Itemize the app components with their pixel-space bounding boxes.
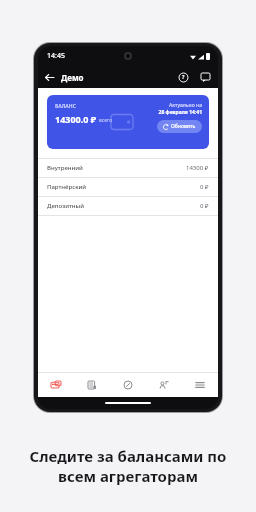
button[interactable]: Статистика xyxy=(110,373,146,397)
button[interactable]: Баланс xyxy=(38,373,74,397)
button[interactable]: Пользователи xyxy=(146,373,182,397)
staticText: 0 ₽ xyxy=(200,202,209,210)
staticText: 0 ₽ xyxy=(200,183,209,191)
button[interactable]: Депозитный xyxy=(38,196,218,215)
button[interactable]: БАЛАНС xyxy=(47,95,209,149)
staticText: всем агрегаторам xyxy=(0,466,256,486)
button[interactable]: Сообщения xyxy=(197,69,213,85)
staticText: БАЛАНС xyxy=(55,103,76,110)
staticText: Внутренний xyxy=(47,164,186,172)
staticText: 28 февраля 14:41 xyxy=(158,109,202,116)
staticText: Демо xyxy=(61,72,84,83)
staticText: всего xyxy=(99,117,113,124)
button[interactable]: Обновить xyxy=(157,120,202,133)
staticText: 14:45 xyxy=(47,51,65,61)
staticText: 14300 ₽ xyxy=(186,164,209,172)
button[interactable]: Отчёты xyxy=(74,373,110,397)
staticText: Актуально на xyxy=(168,102,202,109)
button[interactable]: Меню xyxy=(182,373,218,397)
staticText: 14300.0 ₽ xyxy=(55,113,97,125)
button[interactable]: Назад xyxy=(38,66,60,88)
staticText: Следите за балансами по xyxy=(0,446,256,466)
button[interactable]: Помощь xyxy=(175,69,191,85)
staticText: ? xyxy=(182,74,185,81)
button[interactable]: Партнёрский xyxy=(38,177,218,196)
staticText: Обновить xyxy=(171,123,196,130)
staticText: Депозитный xyxy=(47,202,200,210)
button[interactable]: Внутренний xyxy=(38,158,218,177)
staticText: Партнёрский xyxy=(47,183,200,191)
